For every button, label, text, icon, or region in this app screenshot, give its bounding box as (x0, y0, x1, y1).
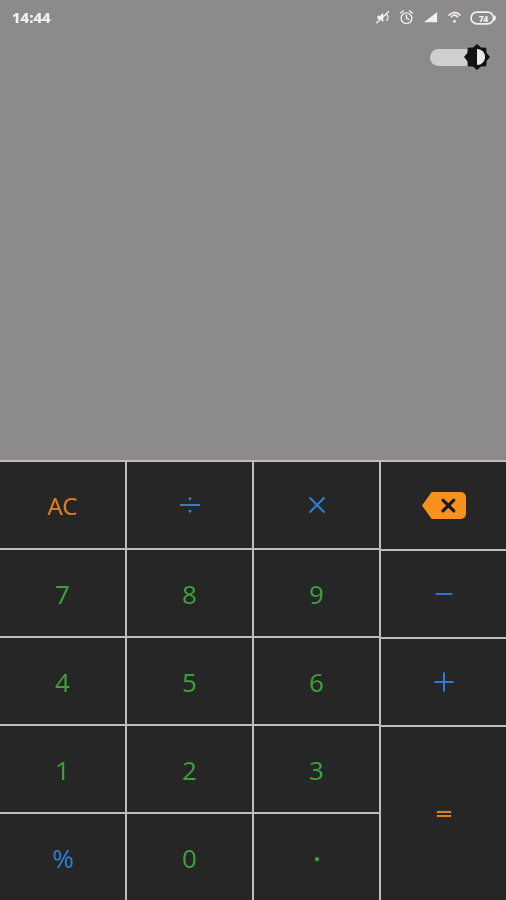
button[interactable]: % (0, 814, 125, 900)
staticText: 14:44 (12, 7, 51, 27)
button[interactable]: 3 (254, 726, 379, 812)
button[interactable]: 9 (254, 550, 379, 636)
staticText: 2 (182, 752, 197, 787)
staticText: 8 (182, 576, 197, 611)
staticText: 74 (479, 13, 489, 24)
staticText: 6 (309, 664, 324, 699)
button[interactable]: 2 (127, 726, 252, 812)
button[interactable]: Plus (381, 639, 506, 725)
button[interactable]: AC (0, 462, 125, 548)
button[interactable]: 1 (0, 726, 125, 812)
staticText: 9 (309, 576, 324, 611)
staticText: 4 (55, 664, 70, 699)
button[interactable]: Equals (381, 727, 506, 900)
button[interactable]: Multiply (254, 462, 379, 548)
button[interactable]: 6 (254, 638, 379, 724)
staticText: 7 (55, 576, 70, 611)
button[interactable]: 4 (0, 638, 125, 724)
button[interactable]: Backspace (381, 462, 506, 549)
button[interactable]: 0 (127, 814, 252, 900)
button[interactable]: 5 (127, 638, 252, 724)
button[interactable]: 7 (0, 550, 125, 636)
staticText: 1 (55, 752, 70, 787)
button[interactable]: Decimal point (254, 814, 379, 900)
button[interactable]: Brightness (430, 42, 490, 72)
staticText: % (52, 840, 74, 875)
button[interactable]: Divide (127, 462, 252, 548)
staticText: 0 (182, 840, 197, 875)
staticText: 3 (309, 752, 324, 787)
staticText: 5 (182, 664, 197, 699)
staticText: AC (47, 489, 78, 522)
button[interactable]: 8 (127, 550, 252, 636)
button[interactable]: Minus (381, 551, 506, 637)
